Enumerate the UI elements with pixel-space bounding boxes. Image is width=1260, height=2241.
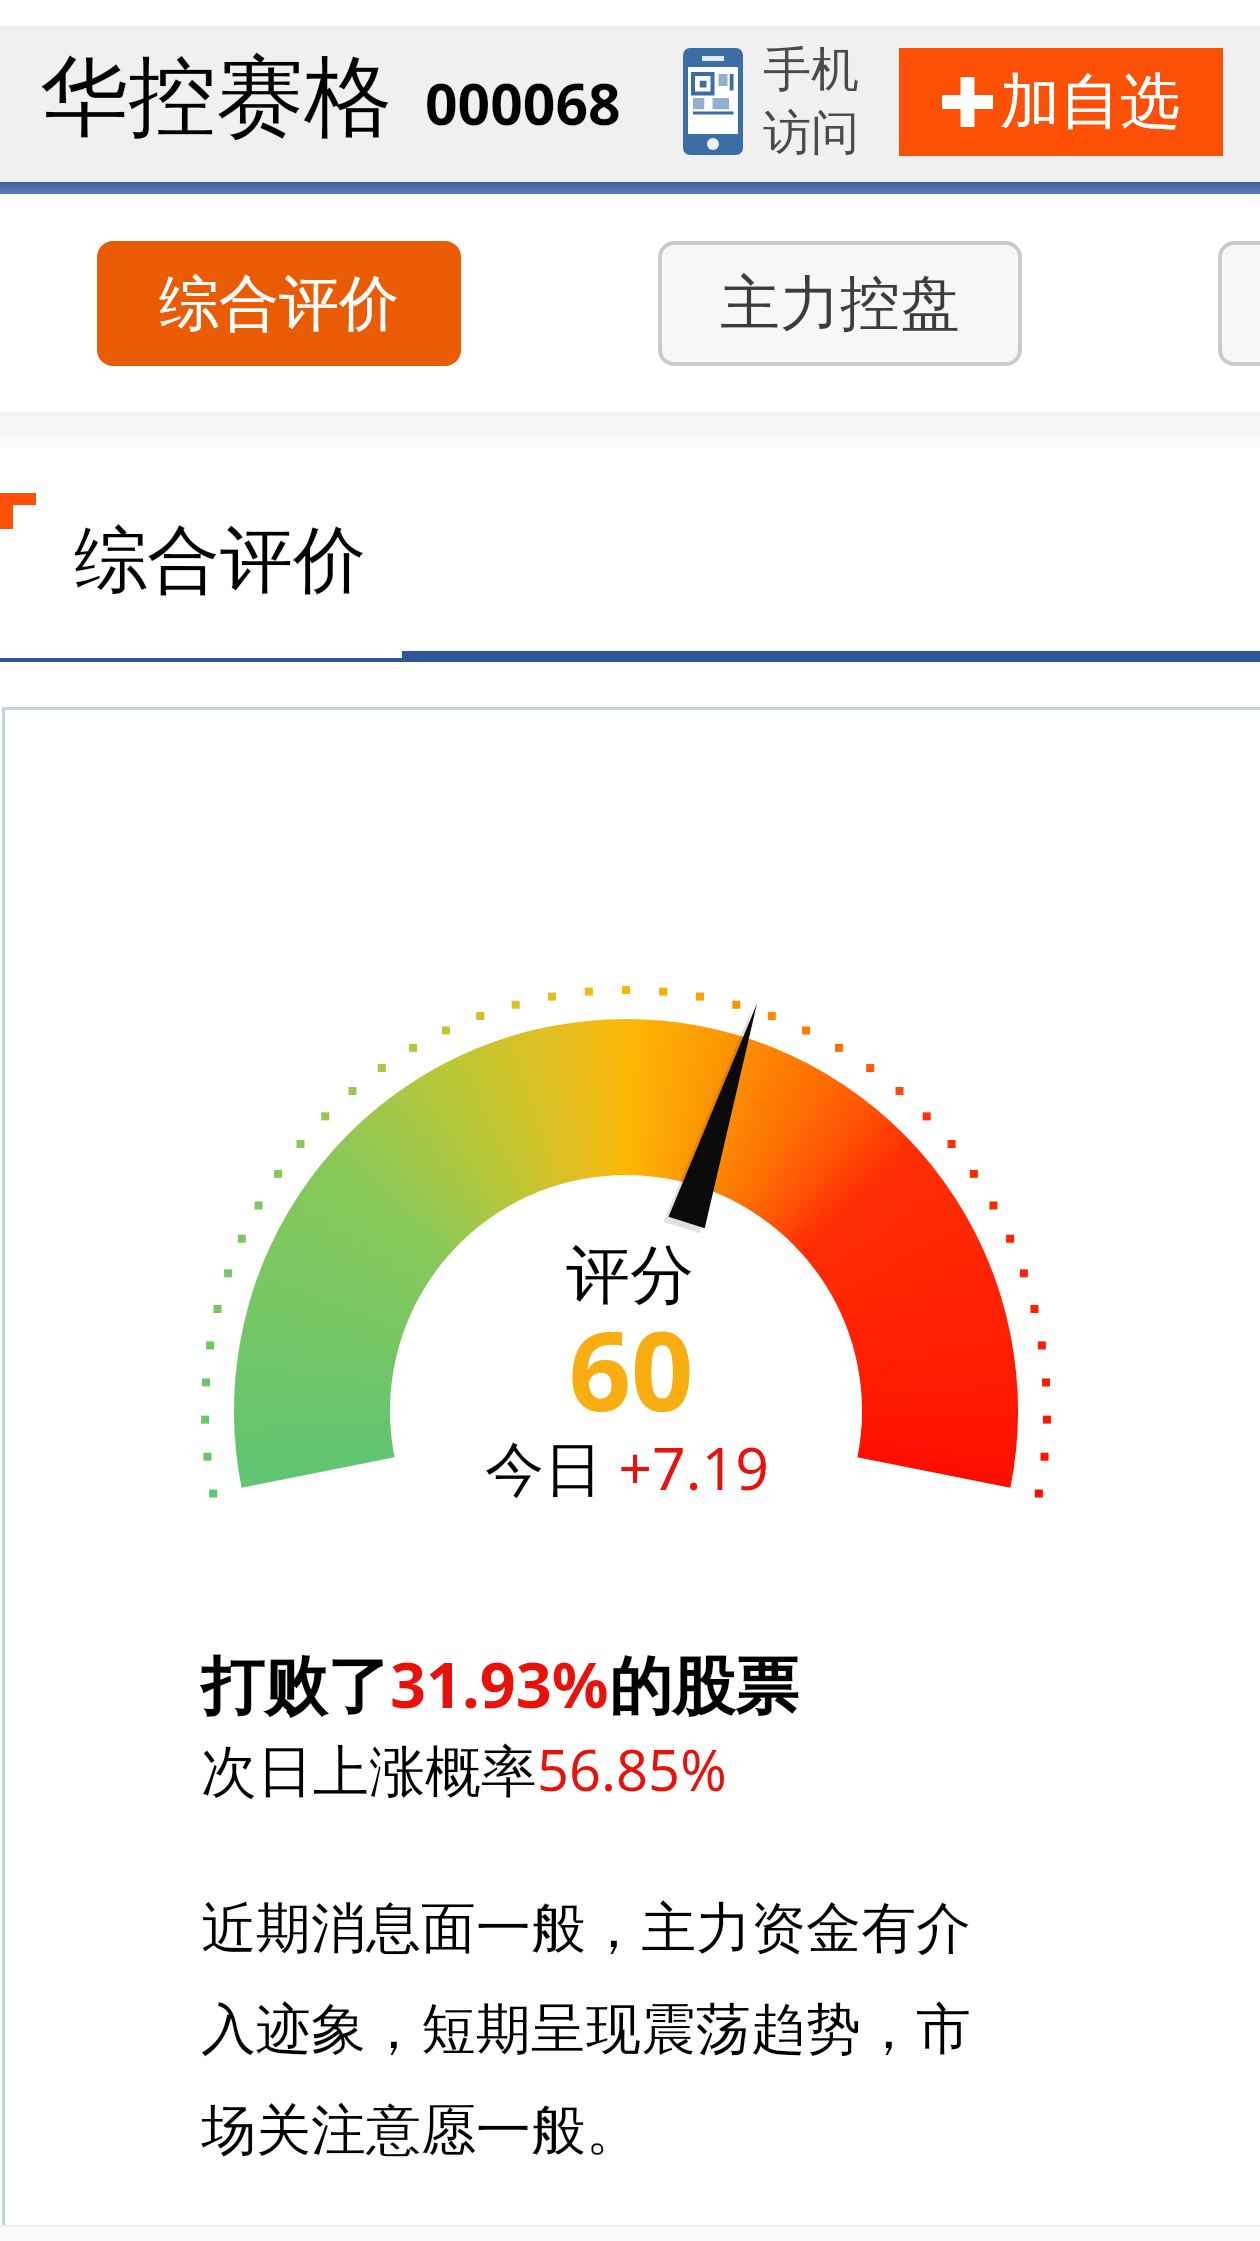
staticText: 60 xyxy=(1,1294,1260,1442)
staticText: 手机 xyxy=(763,40,859,100)
staticText: 今日 +7.19 xyxy=(0,1427,1257,1508)
staticText: 综合评价 xyxy=(159,266,399,342)
staticText: 打败了31.93%的股票 xyxy=(201,1641,798,1727)
button[interactable]: 综合评价 xyxy=(97,241,461,366)
staticText: 000068 xyxy=(425,64,621,142)
button[interactable]: 主力控盘 xyxy=(658,241,1022,366)
staticText: 次日上涨概率56.85% xyxy=(201,1731,727,1807)
staticText: 访问 xyxy=(763,103,859,163)
staticText: 主力控盘 xyxy=(720,266,960,342)
button[interactable]: 资金流向 xyxy=(1218,241,1260,366)
staticText: 加自选 xyxy=(1000,64,1180,140)
button[interactable]: 加自选 xyxy=(899,48,1223,156)
staticText: 近期消息面一般，主力资金有介入迹象，短期呈现震荡趋势，市场关注意愿一般。 xyxy=(201,1894,991,2166)
staticText: 评分 xyxy=(0,1235,1260,1316)
staticText: 华控赛格 xyxy=(40,42,392,153)
button[interactable]: 手机访问 xyxy=(683,40,859,163)
staticText: 综合评价 xyxy=(74,515,366,607)
